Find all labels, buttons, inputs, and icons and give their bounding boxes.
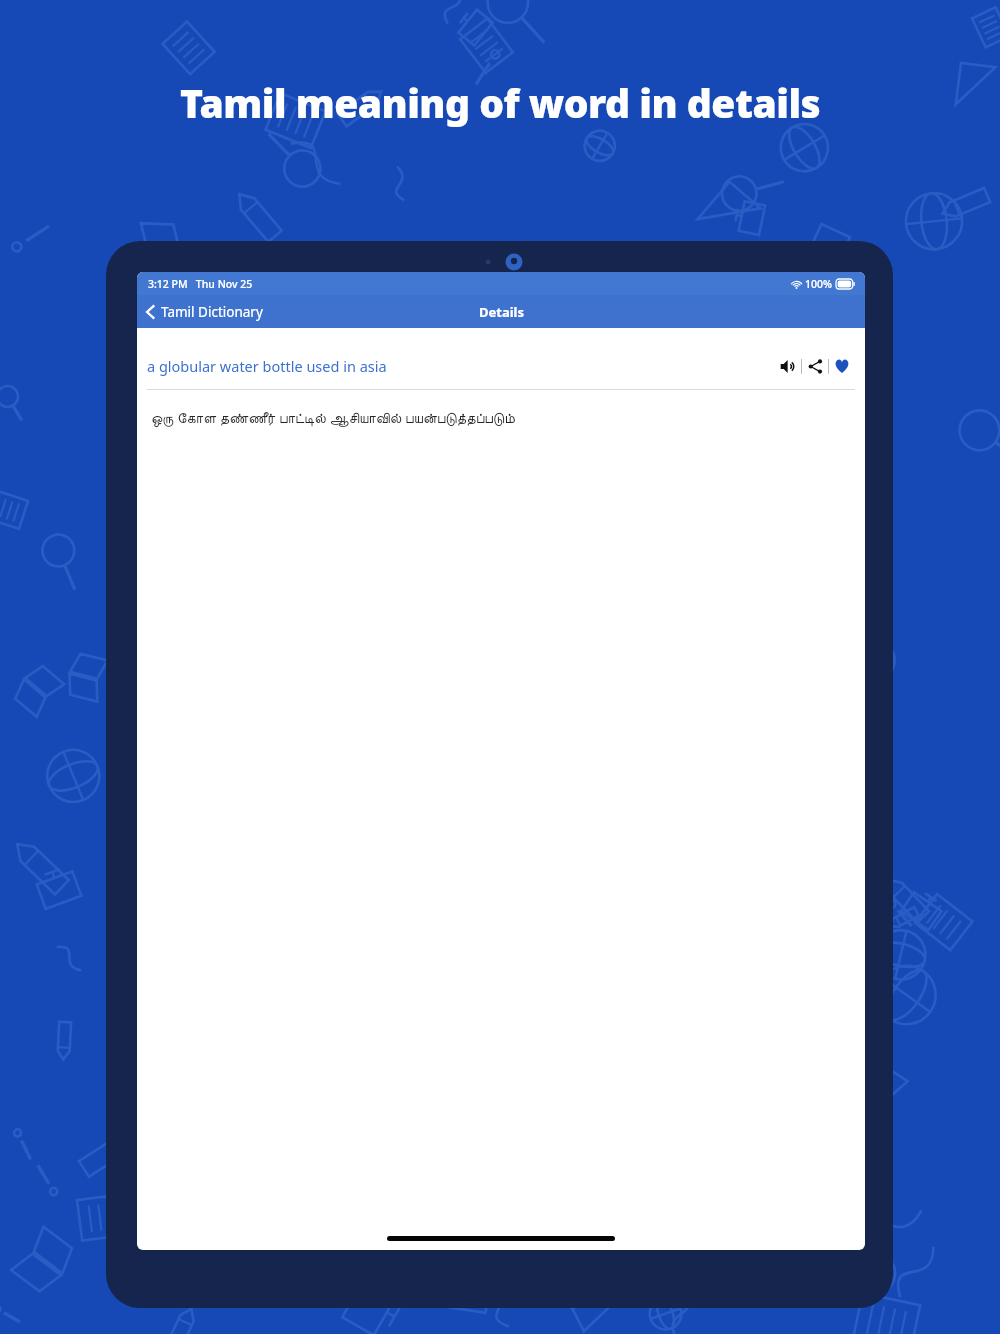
staticText: Details (479, 303, 524, 321)
button[interactable]: Favourite (829, 354, 855, 378)
staticText: ஒரு கோள தண்ணீர் பாட்டில் ஆசியாவில் பயன்ப… (151, 407, 515, 427)
staticText: a globular water bottle used in asia (147, 356, 775, 376)
staticText: 3:12 PM Thu Nov 25 (148, 277, 253, 291)
staticText: 100% (805, 277, 832, 291)
staticText: Tamil Dictionary (161, 303, 263, 321)
button[interactable]: Tamil Dictionary (137, 295, 273, 328)
button[interactable]: Play pronunciation (775, 354, 801, 378)
staticText: Tamil meaning of word in details (180, 76, 821, 129)
button[interactable]: Share (802, 354, 828, 378)
